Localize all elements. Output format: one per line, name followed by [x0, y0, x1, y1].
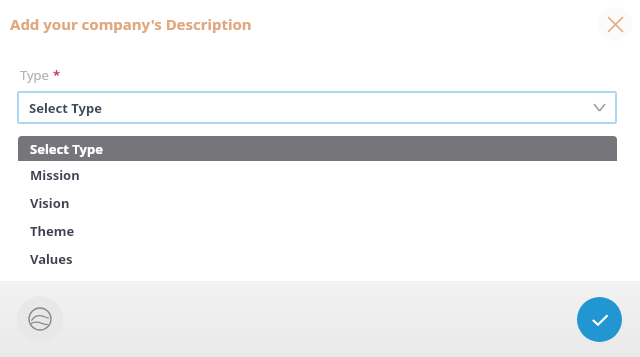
button[interactable]: Close: [598, 7, 632, 41]
button[interactable]: Vision: [18, 189, 617, 217]
button[interactable]: Values: [18, 245, 617, 272]
staticText: Add your company's Description: [10, 14, 252, 34]
staticText: Select Type: [29, 99, 102, 117]
staticText: Values: [30, 250, 73, 268]
button[interactable]: Select Type: [17, 91, 617, 124]
button[interactable]: Company logo: [17, 296, 63, 342]
staticText: *: [53, 66, 61, 84]
button[interactable]: Select Type: [18, 136, 617, 161]
staticText: Mission: [30, 166, 80, 184]
button[interactable]: Mission: [18, 161, 617, 189]
button[interactable]: Save: [577, 297, 622, 342]
button[interactable]: Theme: [18, 217, 617, 245]
staticText: Vision: [30, 194, 70, 212]
staticText: Theme: [30, 222, 75, 240]
staticText: Select Type: [30, 140, 103, 158]
staticText: Type: [20, 66, 49, 84]
